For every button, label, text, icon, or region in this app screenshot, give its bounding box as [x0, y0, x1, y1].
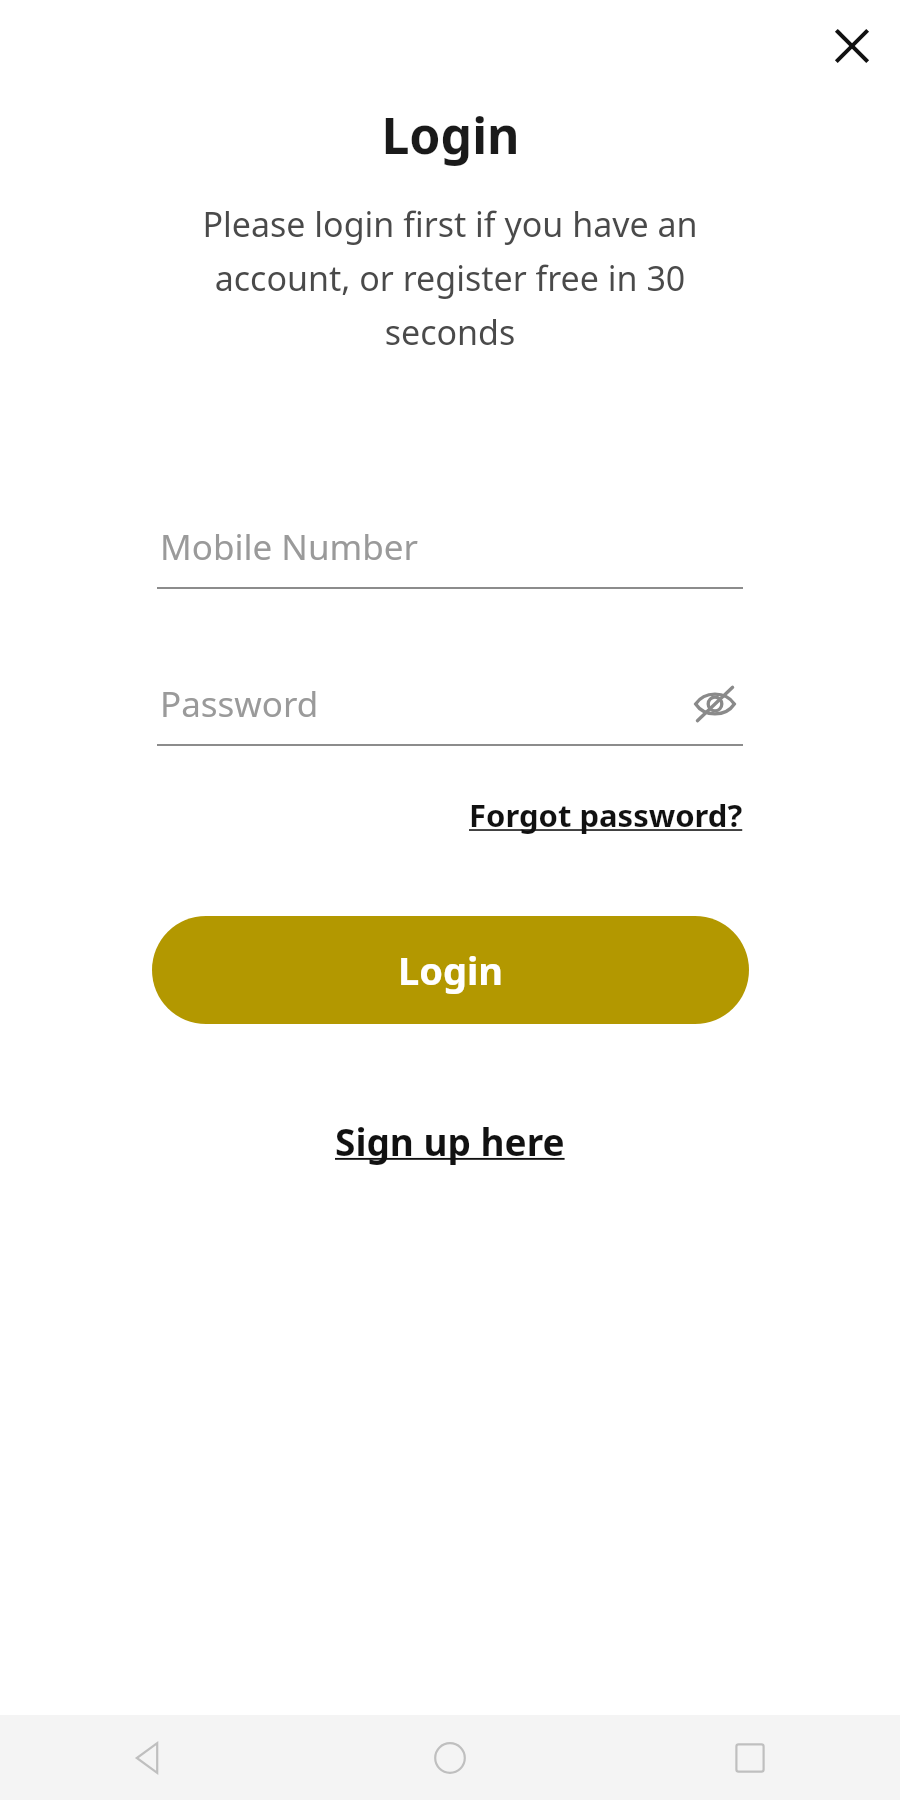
staticText: Forgot password? [469, 794, 743, 836]
button[interactable]: Show password [687, 679, 743, 729]
staticText: Login [398, 944, 504, 996]
button[interactable]: Back [0, 1715, 300, 1800]
button[interactable]: Mobile Number [157, 522, 743, 589]
button[interactable]: Forgot password? [469, 794, 743, 836]
staticText: Sign up here [335, 1116, 565, 1166]
staticText: Login [381, 101, 520, 169]
button[interactable]: Sign up here [335, 1116, 565, 1166]
staticText: Password [160, 680, 319, 728]
button[interactable]: Password [157, 679, 743, 746]
button[interactable]: Login [152, 916, 749, 1024]
button[interactable]: Home [300, 1715, 600, 1800]
staticText: Please login first if you have an accoun… [160, 201, 740, 355]
button[interactable]: Recent apps [600, 1715, 900, 1800]
staticText: Mobile Number [160, 523, 419, 571]
button[interactable]: Close [818, 12, 886, 80]
